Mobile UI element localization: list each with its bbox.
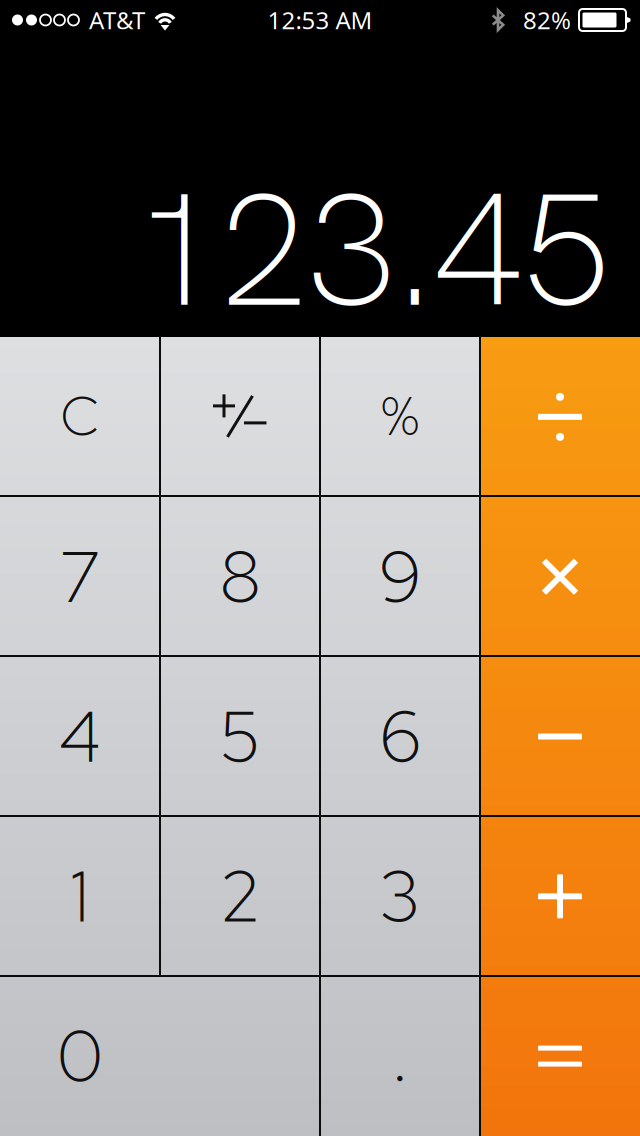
button[interactable]: 6 — [320, 657, 480, 816]
button[interactable]: 7 — [0, 497, 160, 657]
button[interactable]: % — [320, 337, 480, 497]
button[interactable]: 4 — [0, 657, 160, 816]
button[interactable]: Plus minus — [160, 337, 320, 497]
staticText: 9 — [378, 530, 421, 623]
button[interactable]: Equals — [480, 976, 640, 1136]
button[interactable]: 5 — [160, 657, 320, 816]
button[interactable]: Multiply — [480, 497, 640, 657]
staticText: 8 — [219, 530, 261, 623]
staticText: 12:53 AM — [267, 4, 372, 36]
staticText: 1 — [70, 850, 89, 943]
button[interactable]: 9 — [320, 497, 480, 657]
staticText: 123.45 — [132, 147, 610, 352]
staticText: AT&T — [89, 4, 145, 36]
button[interactable]: 0 — [0, 976, 320, 1136]
button[interactable]: 1 — [0, 816, 160, 976]
staticText: 7 — [59, 530, 101, 623]
staticText: % — [381, 381, 419, 451]
staticText: 3 — [379, 850, 421, 943]
staticText: . — [391, 1009, 409, 1103]
staticText: 6 — [379, 690, 421, 783]
button[interactable]: . — [320, 976, 480, 1136]
button[interactable]: Plus — [480, 816, 640, 976]
staticText: 4 — [59, 690, 101, 783]
button[interactable]: Minus — [480, 657, 640, 816]
staticText: 2 — [219, 850, 261, 943]
staticText: C — [60, 381, 99, 451]
button[interactable]: 8 — [160, 497, 320, 657]
button[interactable]: 3 — [320, 816, 480, 976]
button[interactable]: Divide — [480, 337, 640, 497]
staticText: 0 — [57, 1009, 103, 1103]
staticText: 82% — [523, 4, 571, 36]
button[interactable]: 2 — [160, 816, 320, 976]
button[interactable]: C — [0, 337, 160, 497]
staticText: 5 — [219, 690, 261, 783]
